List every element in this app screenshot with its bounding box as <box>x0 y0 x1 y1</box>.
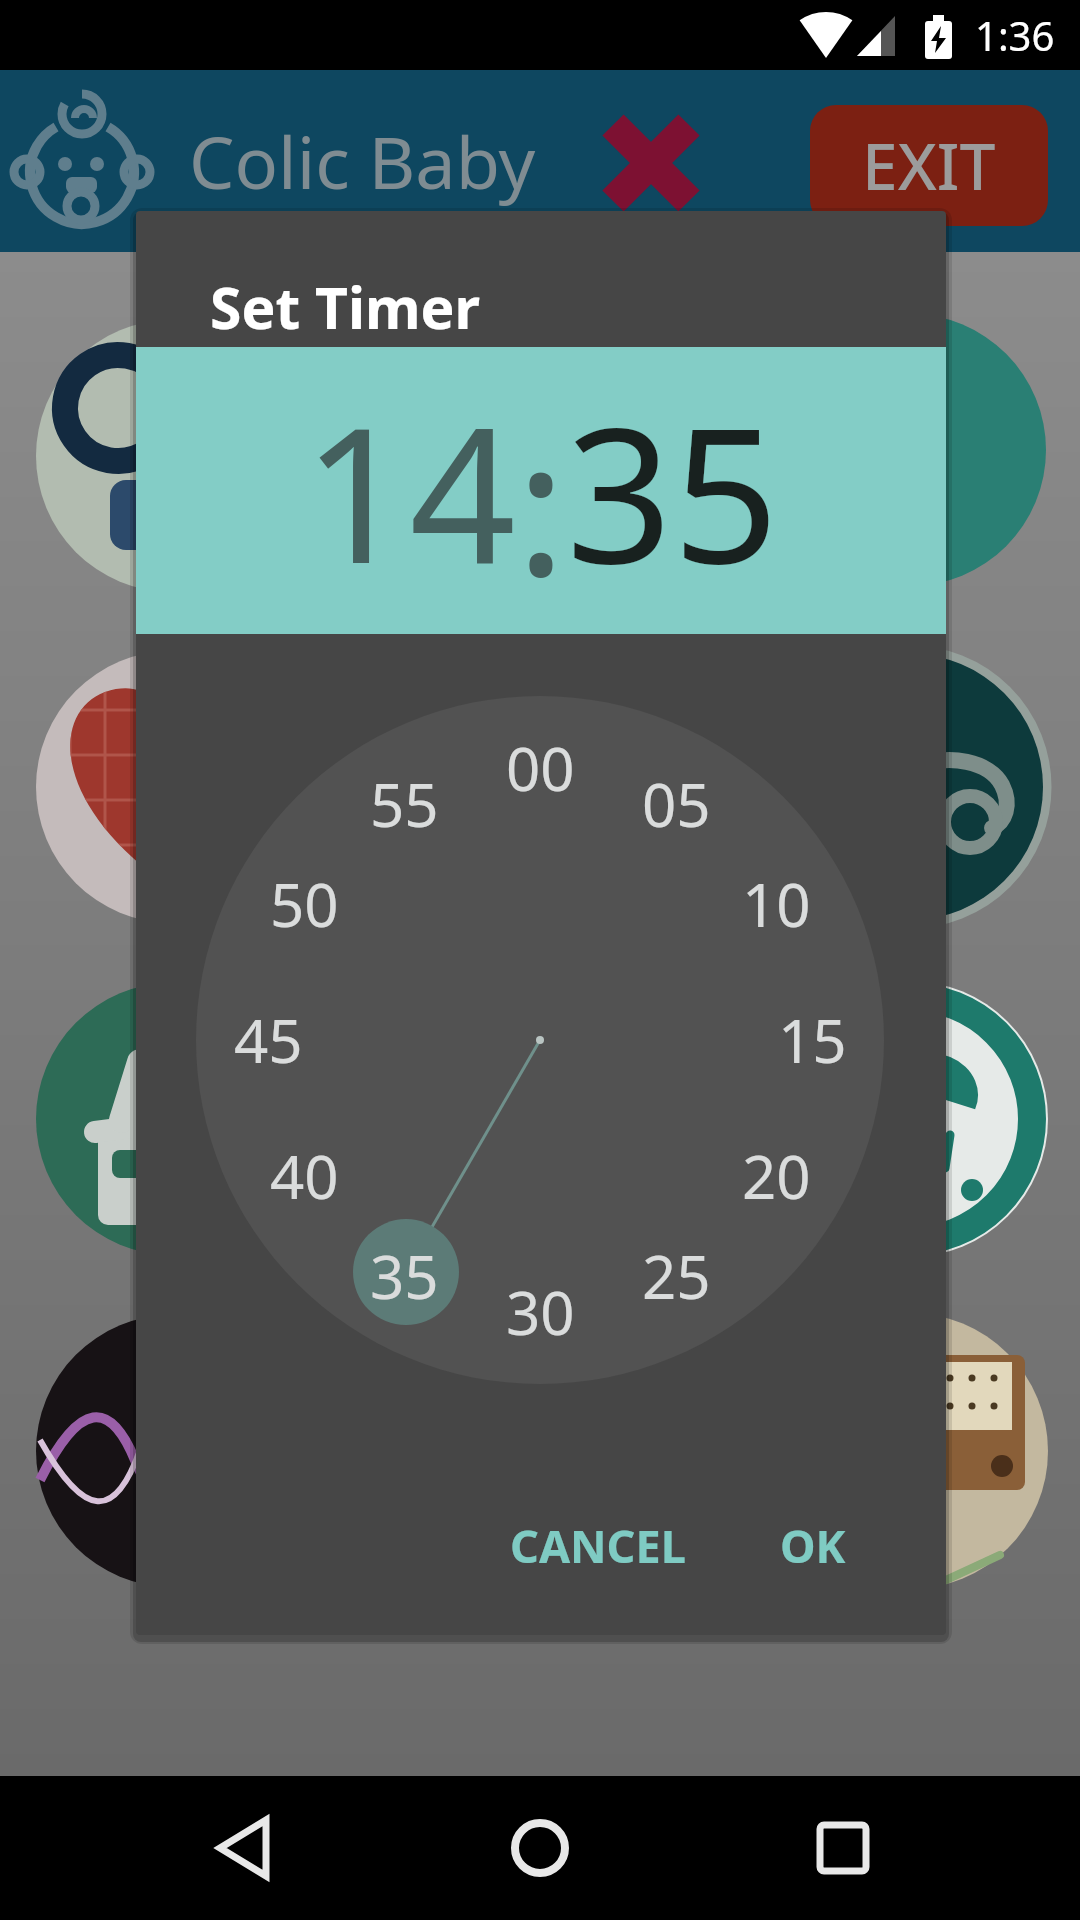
staticText: Colic Baby <box>189 112 536 210</box>
staticText: 35 <box>566 364 779 617</box>
staticText: 45 <box>234 999 303 1081</box>
staticText: 40 <box>270 1135 339 1217</box>
staticText: 50 <box>270 863 339 945</box>
staticText: 00 <box>506 727 575 809</box>
button[interactable] <box>720 1776 1080 1920</box>
staticText: Set Timer <box>210 268 481 346</box>
staticText: 35 <box>370 1235 439 1317</box>
staticText: 25 <box>642 1235 711 1317</box>
staticText: 15 <box>778 999 847 1081</box>
button[interactable]: CANCEL <box>490 1495 706 1595</box>
staticText: 05 <box>642 763 711 845</box>
staticText: OK <box>780 1515 846 1576</box>
staticText: 14 <box>303 364 516 617</box>
staticText: 55 <box>370 763 439 845</box>
staticText: 30 <box>506 1271 575 1353</box>
button[interactable]: OK <box>740 1495 886 1595</box>
staticText: 1:36 <box>975 8 1055 62</box>
button[interactable]: EXIT <box>810 105 1048 226</box>
staticText: 20 <box>742 1135 811 1217</box>
button[interactable] <box>601 113 701 213</box>
staticText: 10 <box>742 863 811 945</box>
button[interactable] <box>0 1776 360 1920</box>
staticText: : <box>516 376 566 629</box>
button[interactable] <box>360 1776 720 1920</box>
staticText: EXIT <box>862 122 996 209</box>
staticText: CANCEL <box>510 1515 686 1576</box>
